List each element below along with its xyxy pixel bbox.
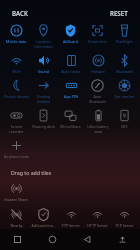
staticText: HTTP Server <box>87 223 108 228</box>
staticText: Hotspot <box>91 69 105 74</box>
button[interactable]: AdGuard <box>62 23 79 45</box>
button[interactable]: Bluetooth <box>115 53 134 75</box>
button[interactable]: Home <box>35 229 70 250</box>
staticText: TCP Server <box>115 223 134 228</box>
button[interactable]: TCP Server <box>114 207 135 229</box>
button[interactable]: Screen recorder <box>8 108 25 135</box>
button[interactable]: Huawei Share <box>3 181 29 203</box>
staticText: Eye comfort <box>114 94 135 99</box>
button[interactable]: Screenshot <box>87 23 108 45</box>
button[interactable]: Hotspot <box>90 53 106 75</box>
button[interactable]: Auto Bluetooth <box>84 78 111 105</box>
button[interactable]: Auto-rotate <box>60 53 82 75</box>
button[interactable]: Mobile data <box>5 23 27 45</box>
staticText: MirrorShare <box>60 124 81 129</box>
staticText: Auto-rotate <box>61 69 81 74</box>
button[interactable]: RESET <box>108 7 130 19</box>
button[interactable]: BACK <box>10 7 30 19</box>
staticText: Floating dock <box>32 124 55 129</box>
staticText: Nearby <box>10 223 23 228</box>
button[interactable]: Wi-Fi <box>9 53 24 75</box>
staticText: Airplane mode <box>4 154 29 159</box>
button[interactable]: AdGuard ma... <box>30 207 57 229</box>
staticText: BACK <box>12 9 28 17</box>
button[interactable]: Sound <box>36 53 51 75</box>
button[interactable]: FTP Server <box>61 207 81 229</box>
staticText: Location information <box>33 39 54 49</box>
button[interactable]: Do not disturb <box>3 78 30 100</box>
staticText: Wi-Fi <box>12 69 21 74</box>
button[interactable]: Airplane mode <box>3 138 30 160</box>
button[interactable]: HTTP Server <box>86 207 109 229</box>
staticText: Auto Bluetooth <box>85 94 110 104</box>
staticText: Do not disturb <box>4 94 29 99</box>
staticText: Bluetooth <box>116 69 133 74</box>
staticText: AdGuard ma... <box>31 223 56 228</box>
button[interactable]: Flashlight <box>115 23 134 45</box>
button[interactable]: Eye comfort <box>113 78 136 100</box>
button[interactable]: Floating dock <box>31 108 56 130</box>
staticText: FTP Server <box>62 223 80 228</box>
button[interactable]: Location information <box>32 23 55 50</box>
staticText: Ultra battery save <box>87 124 109 134</box>
staticText: Huawei Share <box>4 197 28 202</box>
button[interactable]: Back <box>70 229 105 250</box>
button[interactable]: NFC <box>117 108 132 130</box>
staticText: App PIN <box>64 94 78 99</box>
button[interactable]: Ultra battery save <box>86 108 110 135</box>
staticText: Drag to add tiles <box>11 169 52 176</box>
button[interactable]: Floating window <box>30 78 57 105</box>
button[interactable]: App PIN <box>63 78 79 100</box>
button[interactable]: MirrorShare <box>59 108 82 130</box>
staticText: Floating window <box>31 94 56 104</box>
staticText: Screen recorder <box>9 124 24 134</box>
staticText: AdGuard <box>63 39 78 44</box>
staticText: NFC <box>121 124 128 129</box>
staticText: Sound <box>38 69 49 74</box>
button[interactable]: Hide navigation bar <box>105 229 140 250</box>
staticText: Flashlight <box>116 39 133 44</box>
staticText: Screenshot <box>88 39 107 44</box>
button[interactable]: Nearby <box>9 207 24 229</box>
staticText: RESET <box>110 9 128 17</box>
button[interactable]: Recents <box>0 229 35 250</box>
staticText: Mobile data <box>6 39 26 44</box>
